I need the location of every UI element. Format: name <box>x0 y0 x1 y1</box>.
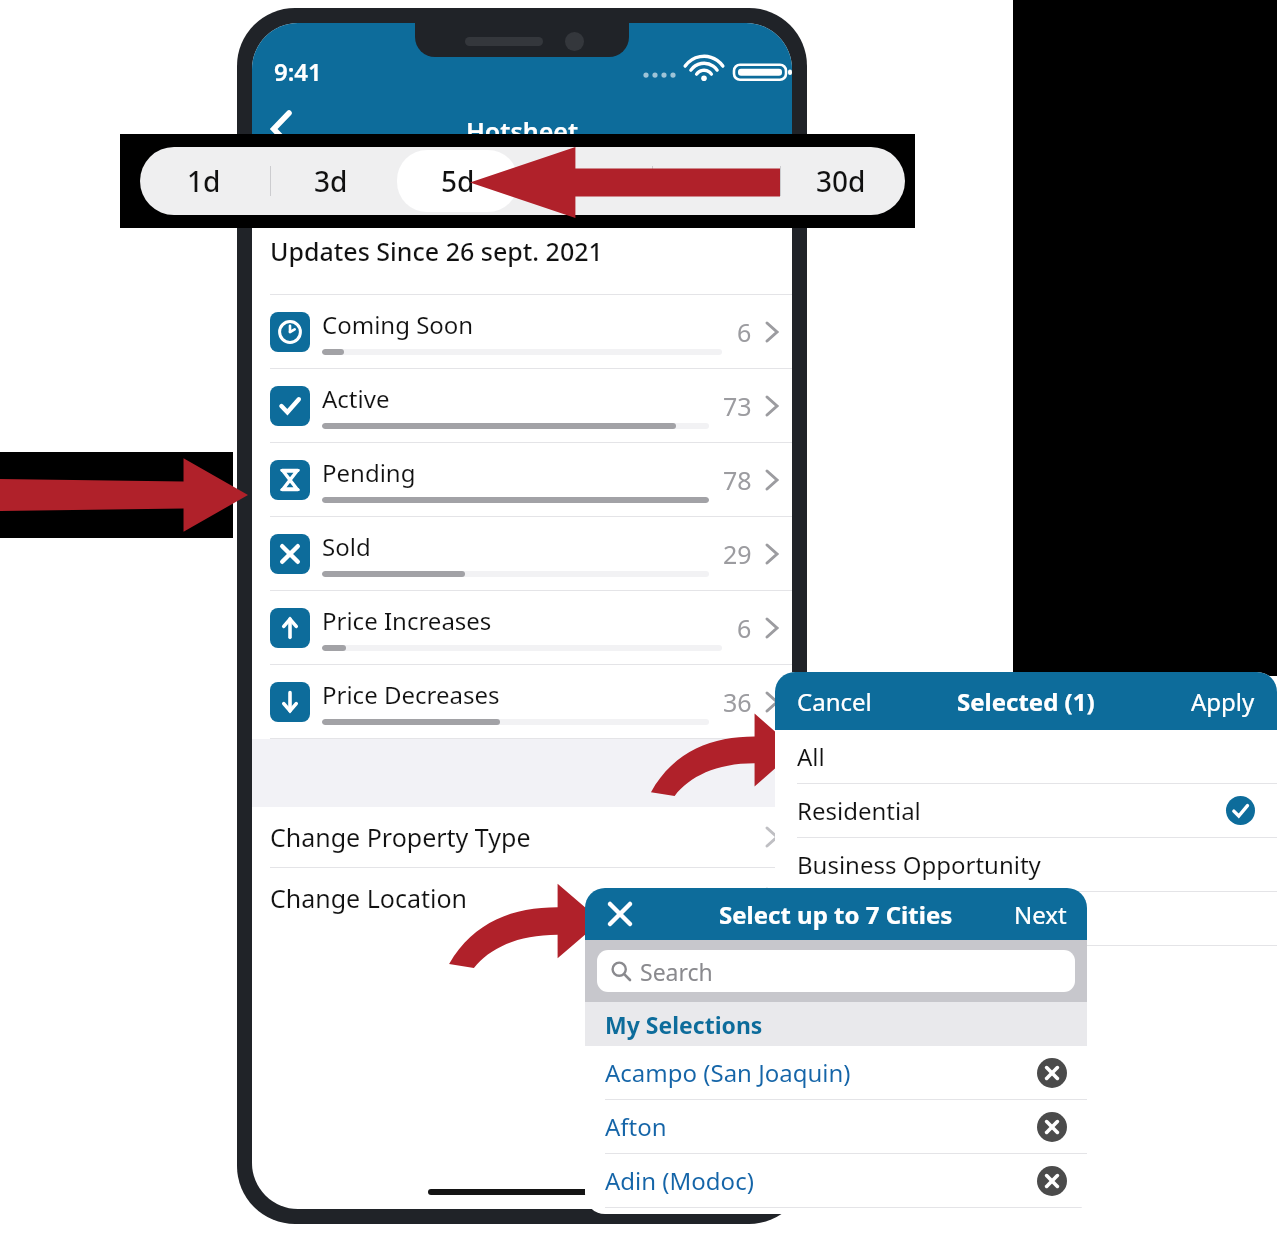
button[interactable] <box>775 946 1277 984</box>
staticText: 78 <box>723 463 752 497</box>
button[interactable]: Residential <box>775 784 1277 837</box>
button[interactable]: Price Decreases <box>252 665 792 739</box>
staticText: 5d <box>441 162 475 200</box>
button[interactable]: Search <box>597 950 1075 992</box>
staticText: 30d <box>816 162 866 200</box>
staticText: Price Decreases <box>322 678 500 711</box>
staticText: 6 <box>737 611 752 645</box>
staticText: 36 <box>723 685 752 719</box>
staticText: 7d <box>568 162 602 200</box>
button[interactable] <box>775 892 1277 945</box>
staticText: 1d <box>187 162 221 200</box>
button[interactable]: 3d <box>270 150 391 212</box>
button[interactable]: Apply <box>1191 685 1255 718</box>
button[interactable]: Coming Soon <box>252 295 792 369</box>
staticText <box>797 949 1255 982</box>
button[interactable]: Cancel <box>797 685 872 718</box>
staticText: 3d <box>314 162 348 200</box>
staticText: All <box>797 740 1255 773</box>
button[interactable]: Back <box>252 103 312 154</box>
staticText: 29 <box>723 537 752 571</box>
staticText: Price Increases <box>322 604 492 637</box>
staticText: Selected (1) <box>957 685 1095 718</box>
button[interactable]: Remove <box>1037 1166 1067 1196</box>
staticText: Residential <box>797 794 1226 827</box>
button[interactable]: Next <box>1014 898 1067 931</box>
staticText: Select up to 7 Cities <box>719 898 953 931</box>
staticText: Sold <box>322 530 371 563</box>
staticText: Afton <box>605 1110 1037 1143</box>
staticText: 14d <box>688 162 738 200</box>
button[interactable]: Sold <box>252 517 792 591</box>
button[interactable]: Change Property Type <box>252 807 792 867</box>
staticText: Coming Soon <box>322 308 474 341</box>
staticText: Change Property Type <box>270 820 766 854</box>
button[interactable]: 30d <box>780 150 902 212</box>
staticText: Search <box>640 956 713 987</box>
staticText: My Selections <box>605 1009 763 1040</box>
staticText: Business Opportunity <box>797 848 1255 881</box>
button[interactable]: 7d <box>524 150 646 212</box>
button[interactable]: Pending <box>252 443 792 517</box>
button[interactable]: Acampo (San Joaquin) <box>585 1046 1087 1099</box>
button[interactable]: Adin (Modoc) <box>585 1154 1087 1207</box>
button[interactable]: All <box>775 730 1277 783</box>
button[interactable]: Remove <box>1037 1058 1067 1088</box>
button[interactable]: Active <box>252 369 792 443</box>
staticText: Pending <box>322 456 416 489</box>
staticText: Active <box>322 382 390 415</box>
staticText: 9:41 <box>274 55 322 88</box>
staticText: Change Location <box>270 881 766 915</box>
staticText: Hotsheet <box>252 114 792 148</box>
button[interactable]: 14d <box>652 150 774 212</box>
staticText: 73 <box>723 389 752 423</box>
button[interactable]: Business Opportunity <box>775 838 1277 891</box>
button[interactable]: Close <box>603 897 637 931</box>
staticText: Acampo (San Joaquin) <box>605 1056 1037 1089</box>
button[interactable]: 1d <box>143 150 264 212</box>
button[interactable]: Afton <box>585 1100 1087 1153</box>
button[interactable]: Change Location <box>252 868 792 928</box>
staticText: Updates Since 26 sept. 2021 <box>270 234 603 268</box>
button[interactable]: Remove <box>1037 1112 1067 1142</box>
staticText: Adin (Modoc) <box>605 1164 1037 1197</box>
staticText: 6 <box>737 315 752 349</box>
button[interactable]: 5d <box>397 150 518 212</box>
button[interactable]: Price Increases <box>252 591 792 665</box>
staticText <box>797 902 1255 935</box>
